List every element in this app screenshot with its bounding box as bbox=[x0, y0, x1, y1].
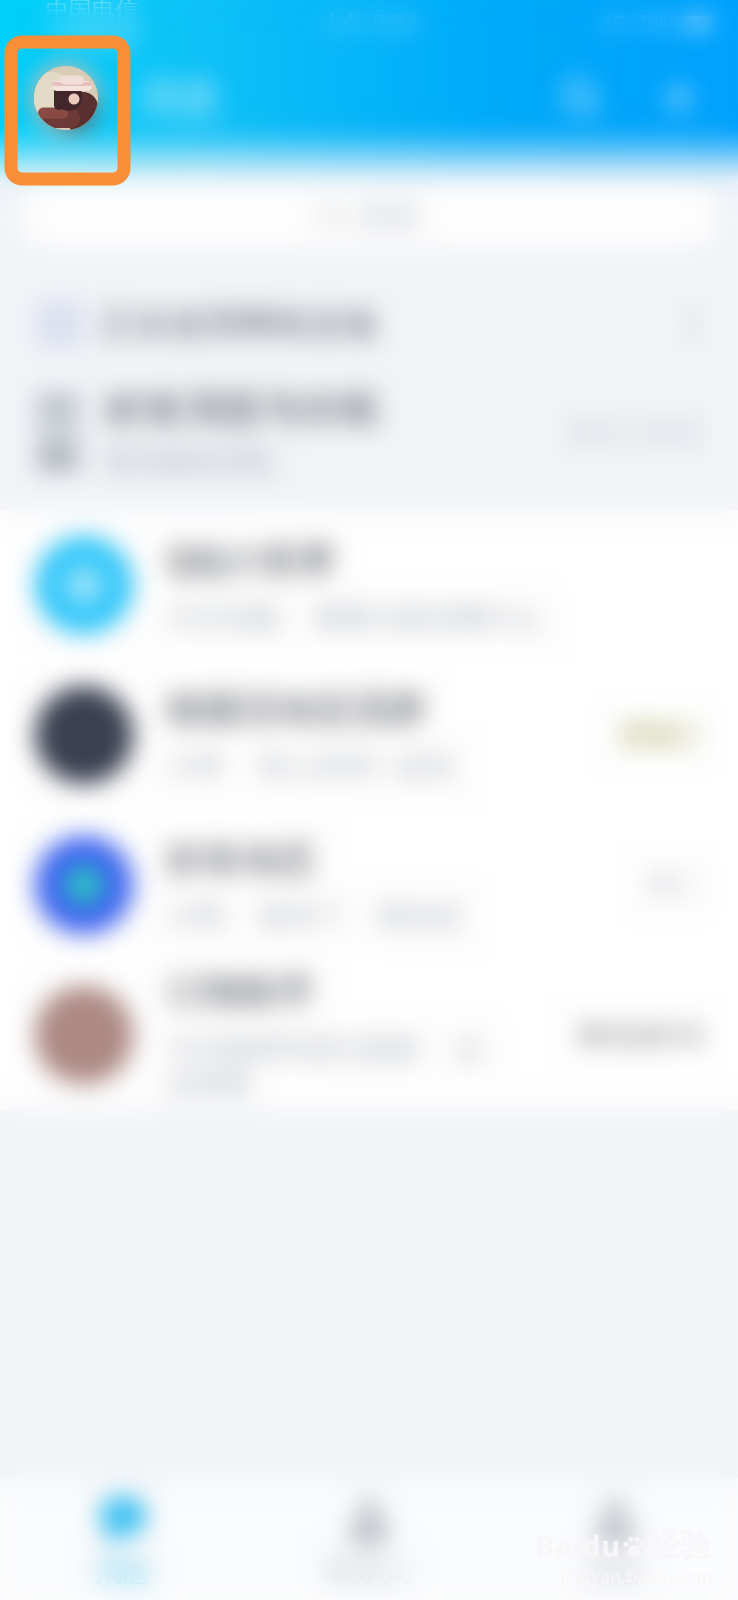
staticText: 小李 · 有人在吗一起玩 bbox=[167, 746, 455, 783]
staticText: 中国联通 bbox=[46, 22, 138, 50]
button[interactable]: QQ小世界 bbox=[0, 510, 738, 660]
staticText: 消息 bbox=[136, 72, 222, 124]
staticText: 78% bbox=[635, 9, 677, 37]
button[interactable]: Search bbox=[558, 75, 604, 121]
staticText: 消息 bbox=[95, 1554, 151, 1588]
staticText: Baidu bbox=[535, 1526, 620, 1565]
button[interactable]: 好友消息与分组 bbox=[0, 372, 738, 492]
staticText: 今日话题 · 看看大家在聊什么 bbox=[167, 598, 539, 635]
staticText: 好友消息与分组 bbox=[106, 385, 379, 433]
staticText: 周二 bbox=[648, 869, 702, 901]
staticText: 动态 bbox=[587, 1554, 643, 1588]
button[interactable]: Profile bbox=[32, 65, 98, 131]
button[interactable]: 校园活动交流群 bbox=[0, 660, 738, 810]
button[interactable]: 动态 bbox=[492, 1478, 738, 1600]
button[interactable]: Add bbox=[656, 75, 702, 121]
staticText: 4G bbox=[600, 9, 628, 37]
staticText: 正在使用网络设备 bbox=[100, 303, 380, 345]
button[interactable]: 订阅助手 bbox=[0, 960, 738, 1110]
button[interactable]: 好友动态 bbox=[0, 810, 738, 960]
staticText: QQ小世界 bbox=[167, 534, 336, 584]
staticText: 好友动态 bbox=[167, 836, 315, 882]
button[interactable]: 正在使用网络设备 bbox=[0, 276, 738, 372]
staticText: 联系人 bbox=[327, 1554, 411, 1588]
staticText: 星期三 bbox=[621, 719, 702, 751]
button[interactable]: 联系人 bbox=[246, 1478, 492, 1600]
staticText: 校园活动交流群 bbox=[167, 686, 426, 732]
staticText: 今日推荐内容已更新 · 点击查看 bbox=[167, 1029, 483, 1101]
staticText: 上午 9:24 bbox=[320, 8, 417, 38]
button[interactable]: 消息 bbox=[0, 1478, 246, 1600]
staticText: 订阅助手 bbox=[167, 969, 315, 1015]
staticText: 昨天20:15 bbox=[581, 1017, 702, 1053]
staticText: 小明 · 发布了 · 新动态 bbox=[167, 896, 463, 933]
staticText: jingyan.baidu.com bbox=[561, 1565, 712, 1588]
staticText: 中国电信 bbox=[46, 0, 138, 23]
